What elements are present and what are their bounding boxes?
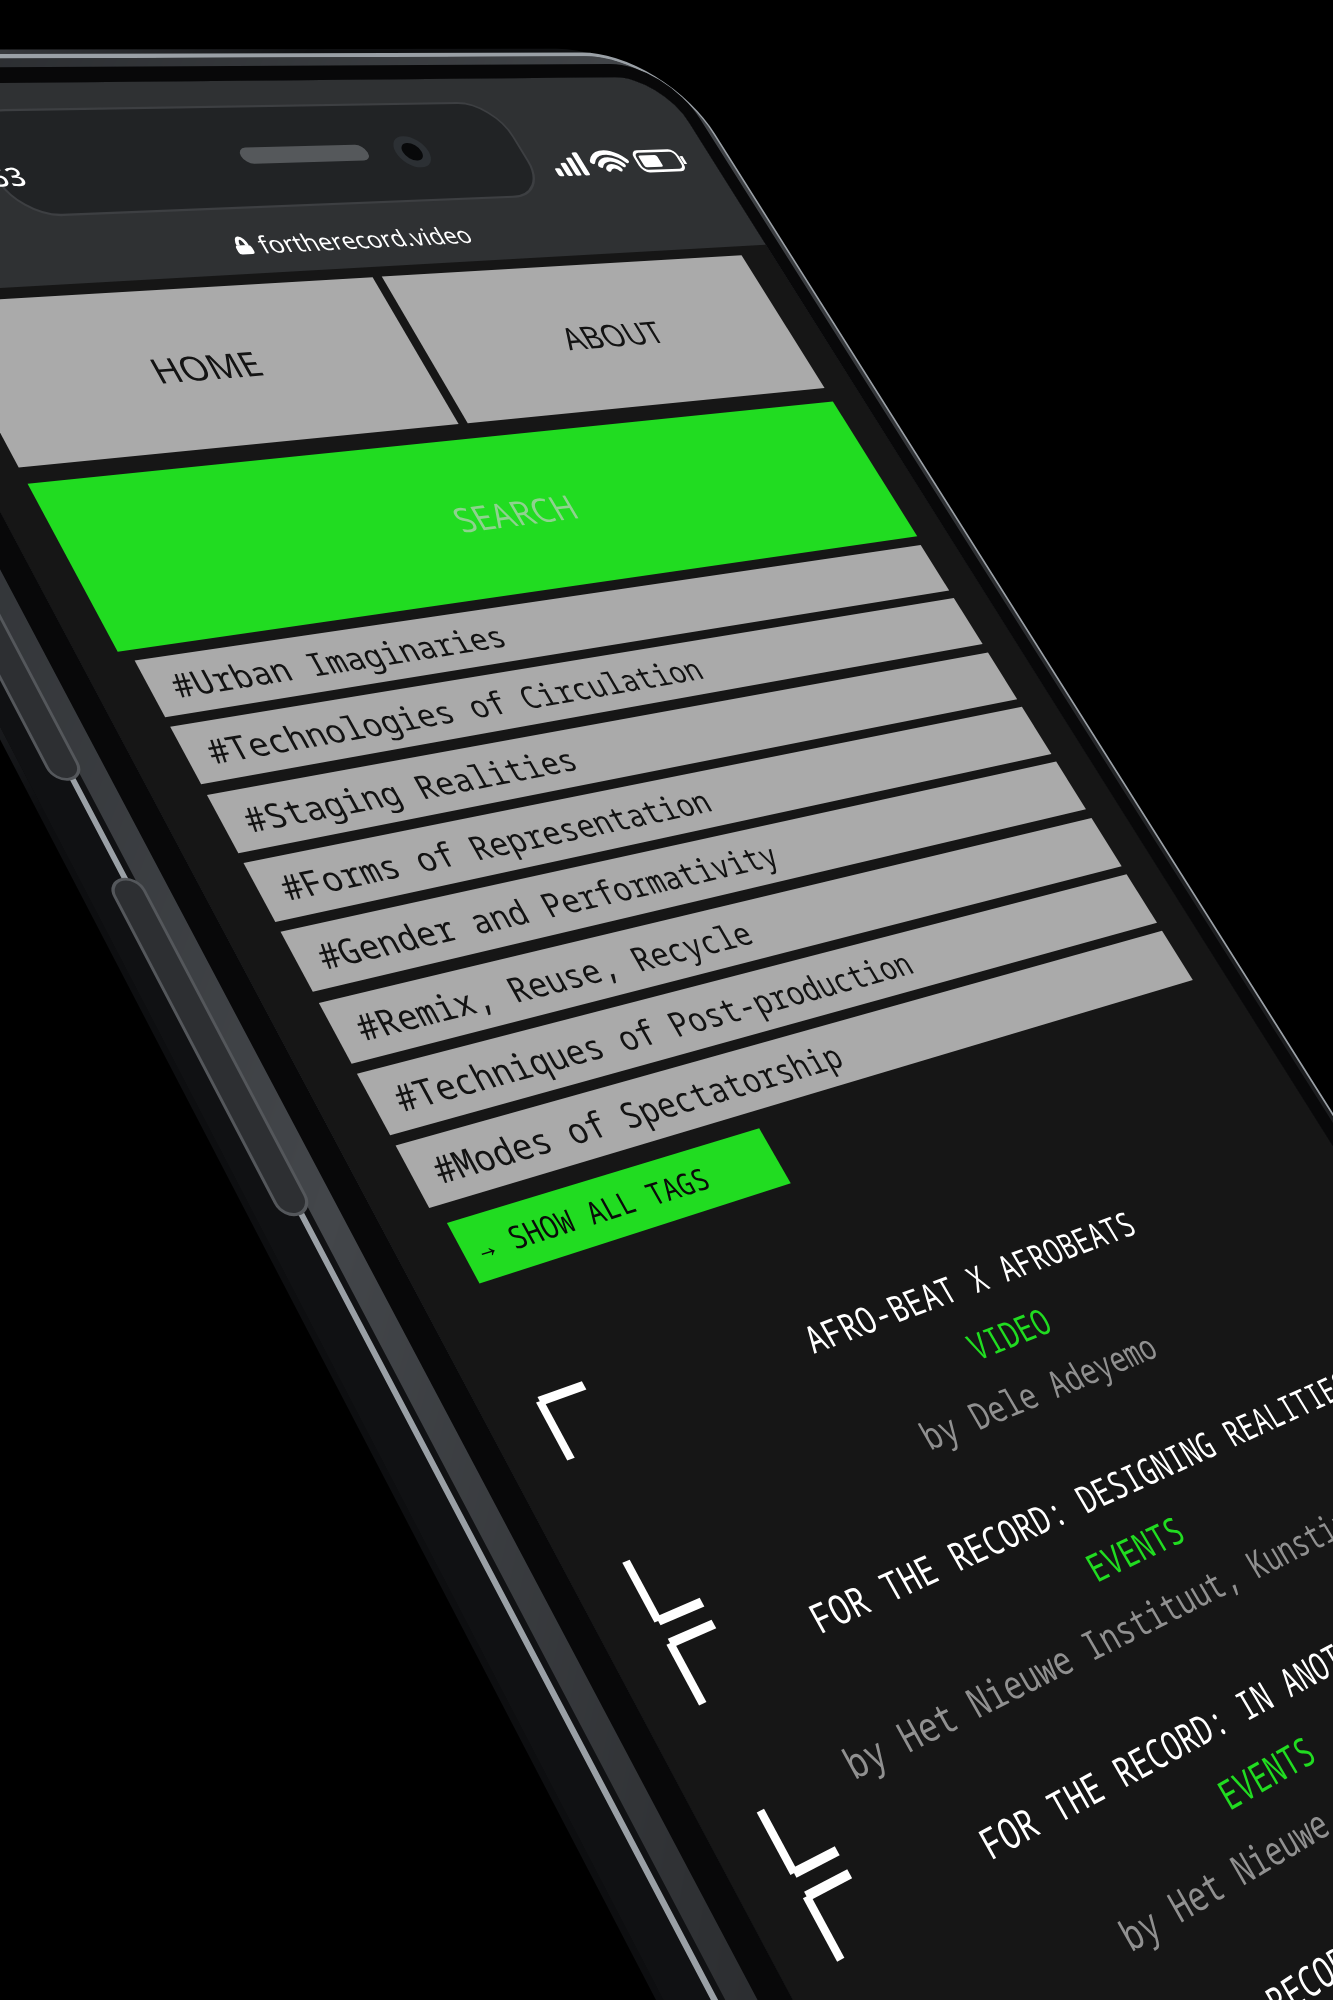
staticText: by Het Nieuwe Instituut (1042, 1833, 1333, 2000)
staticText: #Gender and Performativity (306, 833, 787, 979)
staticText: by Het Nieuwe Instituut, Kunstinstituut (755, 1427, 1333, 1830)
button[interactable]: #Remix, Reuse, Recycle (319, 818, 1122, 1064)
staticText: #Staging Realities (233, 737, 586, 842)
button[interactable]: #Urban Imaginaries (135, 545, 949, 717)
staticText: #Techniques of Post-production (383, 941, 921, 1122)
staticText: fortherecord.video (250, 219, 480, 261)
button[interactable]: #Forms of Representation (243, 707, 1051, 922)
staticText: #Technologies of Circulation (196, 648, 711, 774)
staticText: HOME (140, 340, 272, 393)
staticText: #Forms of Representation (269, 779, 720, 910)
button[interactable]: FOR THE RECORD: IN ANOTHER TIME (821, 1521, 1333, 2000)
button[interactable]: FOR THE RECORD: DESIGNING REALITIES (684, 1326, 1333, 1871)
staticText: AFRO-BEAT X AFROBEATS (554, 1137, 1318, 1454)
button[interactable]: ABOUT (382, 255, 825, 423)
button[interactable]: #Technologies of Circulation (170, 598, 983, 784)
staticText: 9:53 (0, 158, 33, 195)
staticText: FOR THE RECORD: KEEPING TALLY (964, 1724, 1333, 2000)
staticText: SEARCH (442, 484, 587, 542)
button[interactable]: SEARCH (28, 401, 917, 652)
staticText: EVENTS (858, 1573, 1333, 2000)
button[interactable]: FOR THE RECORD: KEEPING TALLY (964, 1724, 1333, 2000)
staticText: FOR THE RECORD: IN ANOTHER TIME (821, 1521, 1333, 1952)
staticText: by Het Nieuwe Instituut (895, 1627, 1333, 2000)
staticText: TALKS (1002, 1778, 1333, 2000)
staticText: ABOUT (551, 311, 672, 359)
other: Status icons (543, 146, 689, 176)
button[interactable]: fortherecord.video (0, 204, 732, 284)
button[interactable]: #Staging Realities (207, 653, 1017, 853)
staticText: by Dele Adeyemo (622, 1235, 1333, 1580)
staticText: → SHOW ALL TAGS (466, 1158, 717, 1269)
button[interactable]: AFRO-BEAT X AFROBEATS (554, 1137, 1333, 1620)
button[interactable]: → SHOW ALL TAGS (447, 1128, 791, 1283)
staticText: VIDEO (588, 1186, 1333, 1516)
staticText: EVENTS (719, 1376, 1333, 1763)
button[interactable]: #Techniques of Post-production (357, 874, 1157, 1135)
staticText: FOR THE RECORD: DESIGNING REALITIES (684, 1326, 1333, 1697)
staticText: #Modes of Spectatorship (421, 1032, 852, 1194)
staticText: #Urban Imaginaries (160, 614, 515, 707)
staticText: #Remix, Reuse, Recycle (345, 910, 761, 1051)
button[interactable]: #Gender and Performativity (280, 762, 1086, 992)
button[interactable]: HOME (0, 277, 459, 467)
button[interactable]: #Modes of Spectatorship (396, 931, 1193, 1208)
